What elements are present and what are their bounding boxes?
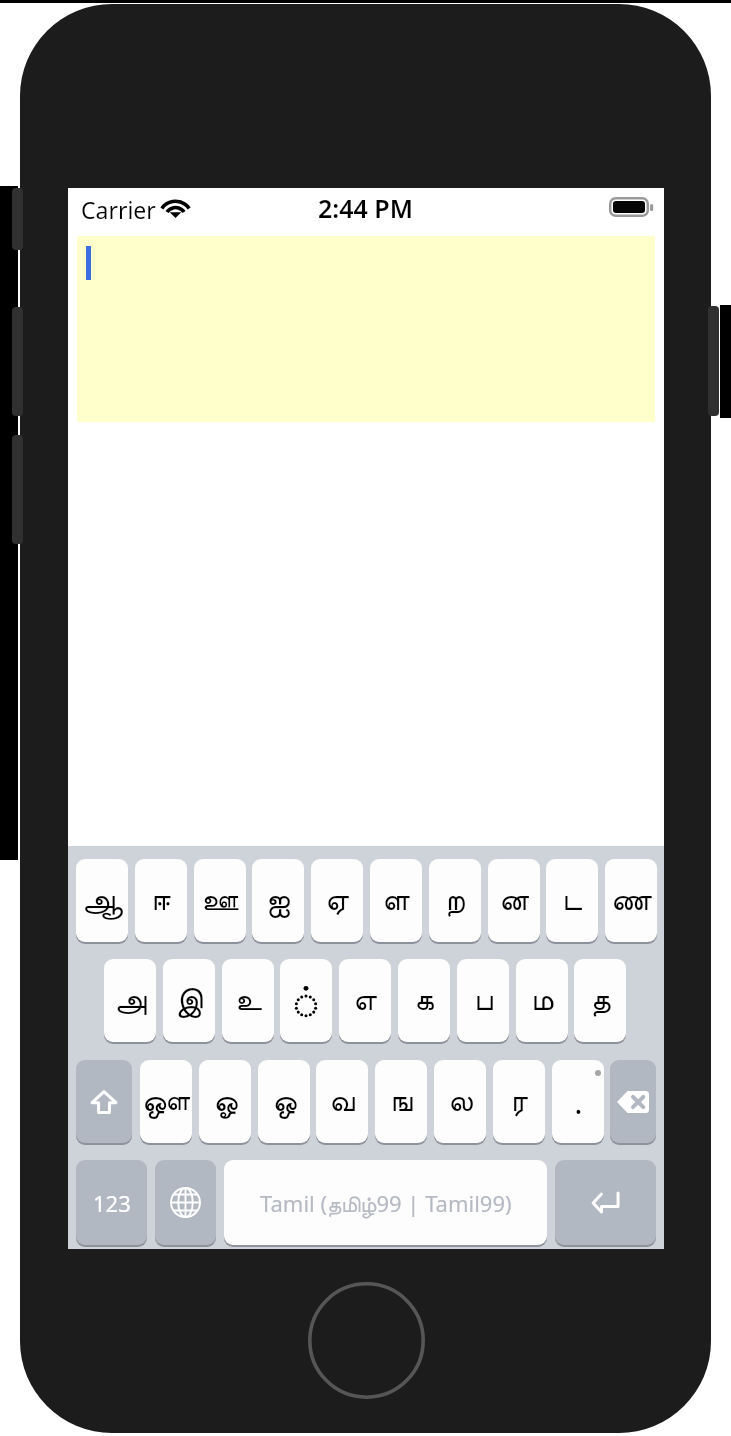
staticText: இ — [175, 985, 203, 1016]
staticText: ஒ — [272, 1086, 297, 1117]
button[interactable]: ஐ — [252, 859, 304, 942]
staticText: ங — [390, 1086, 413, 1117]
staticText: ஈ — [151, 885, 171, 916]
button[interactable] — [280, 959, 332, 1042]
staticText: ஊ — [201, 885, 239, 916]
staticText: ற — [445, 885, 465, 916]
button[interactable]: உ — [222, 959, 274, 1042]
staticText: . — [574, 1081, 583, 1123]
staticText: ஏ — [325, 885, 349, 916]
button[interactable]: க — [398, 959, 450, 1042]
button[interactable]: ஓ — [199, 1060, 251, 1143]
button[interactable]: ஔ — [140, 1060, 192, 1143]
button[interactable]: ண — [605, 859, 657, 942]
staticText: எ — [353, 985, 377, 1016]
staticText: ன — [499, 885, 529, 916]
button[interactable]: ஒ — [258, 1060, 310, 1143]
staticText: க — [414, 985, 434, 1016]
button[interactable]: Shift — [76, 1060, 132, 1143]
staticText: ஆ — [82, 885, 123, 916]
staticText: ள — [382, 885, 410, 916]
staticText: த — [590, 985, 611, 1016]
staticText: ஓ — [213, 1086, 238, 1117]
staticText: Tamil (தமிழ்99 | Tamil99) — [260, 1188, 512, 1218]
button[interactable]: இ — [163, 959, 215, 1042]
button[interactable]: அ — [104, 959, 156, 1042]
button[interactable]: 123 — [76, 1160, 147, 1245]
button[interactable]: ஏ — [311, 859, 363, 942]
staticText: ம — [531, 985, 554, 1016]
button[interactable]: ள — [370, 859, 422, 942]
staticText: 123 — [93, 1188, 131, 1218]
button[interactable]: ஊ — [194, 859, 246, 942]
staticText: ப — [474, 985, 493, 1016]
staticText: ண — [611, 885, 652, 916]
button[interactable]: ட — [546, 859, 598, 942]
button[interactable]: ற — [429, 859, 481, 942]
staticText: அ — [114, 985, 147, 1016]
staticText: Carrier — [81, 194, 156, 225]
button[interactable]: ம — [516, 959, 568, 1042]
button[interactable]: த — [574, 959, 626, 1042]
button[interactable]: Switch keyboard — [155, 1160, 216, 1245]
button[interactable]: ஈ — [135, 859, 187, 942]
button[interactable]: ங — [375, 1060, 427, 1143]
button[interactable]: Return — [555, 1160, 656, 1245]
button[interactable]: ர — [493, 1060, 545, 1143]
staticText: 2:44 PM — [318, 191, 413, 225]
button[interactable]: ப — [457, 959, 509, 1042]
staticText: ட — [562, 885, 582, 916]
button[interactable]: Tamil (தமிழ்99 | Tamil99) — [224, 1160, 547, 1245]
staticText: ஔ — [142, 1086, 190, 1117]
button[interactable]: எ — [339, 959, 391, 1042]
button[interactable]: வ — [316, 1060, 368, 1143]
staticText: வ — [329, 1086, 355, 1117]
button[interactable]: . — [552, 1060, 604, 1143]
button[interactable]: Backspace — [610, 1060, 656, 1143]
button[interactable]: ன — [488, 859, 540, 942]
staticText: ல — [448, 1086, 473, 1117]
staticText: உ — [235, 985, 262, 1016]
button[interactable]: ல — [434, 1060, 486, 1143]
staticText: ர — [511, 1086, 528, 1117]
staticText: ஐ — [266, 885, 290, 916]
button[interactable]: ஆ — [76, 859, 128, 942]
